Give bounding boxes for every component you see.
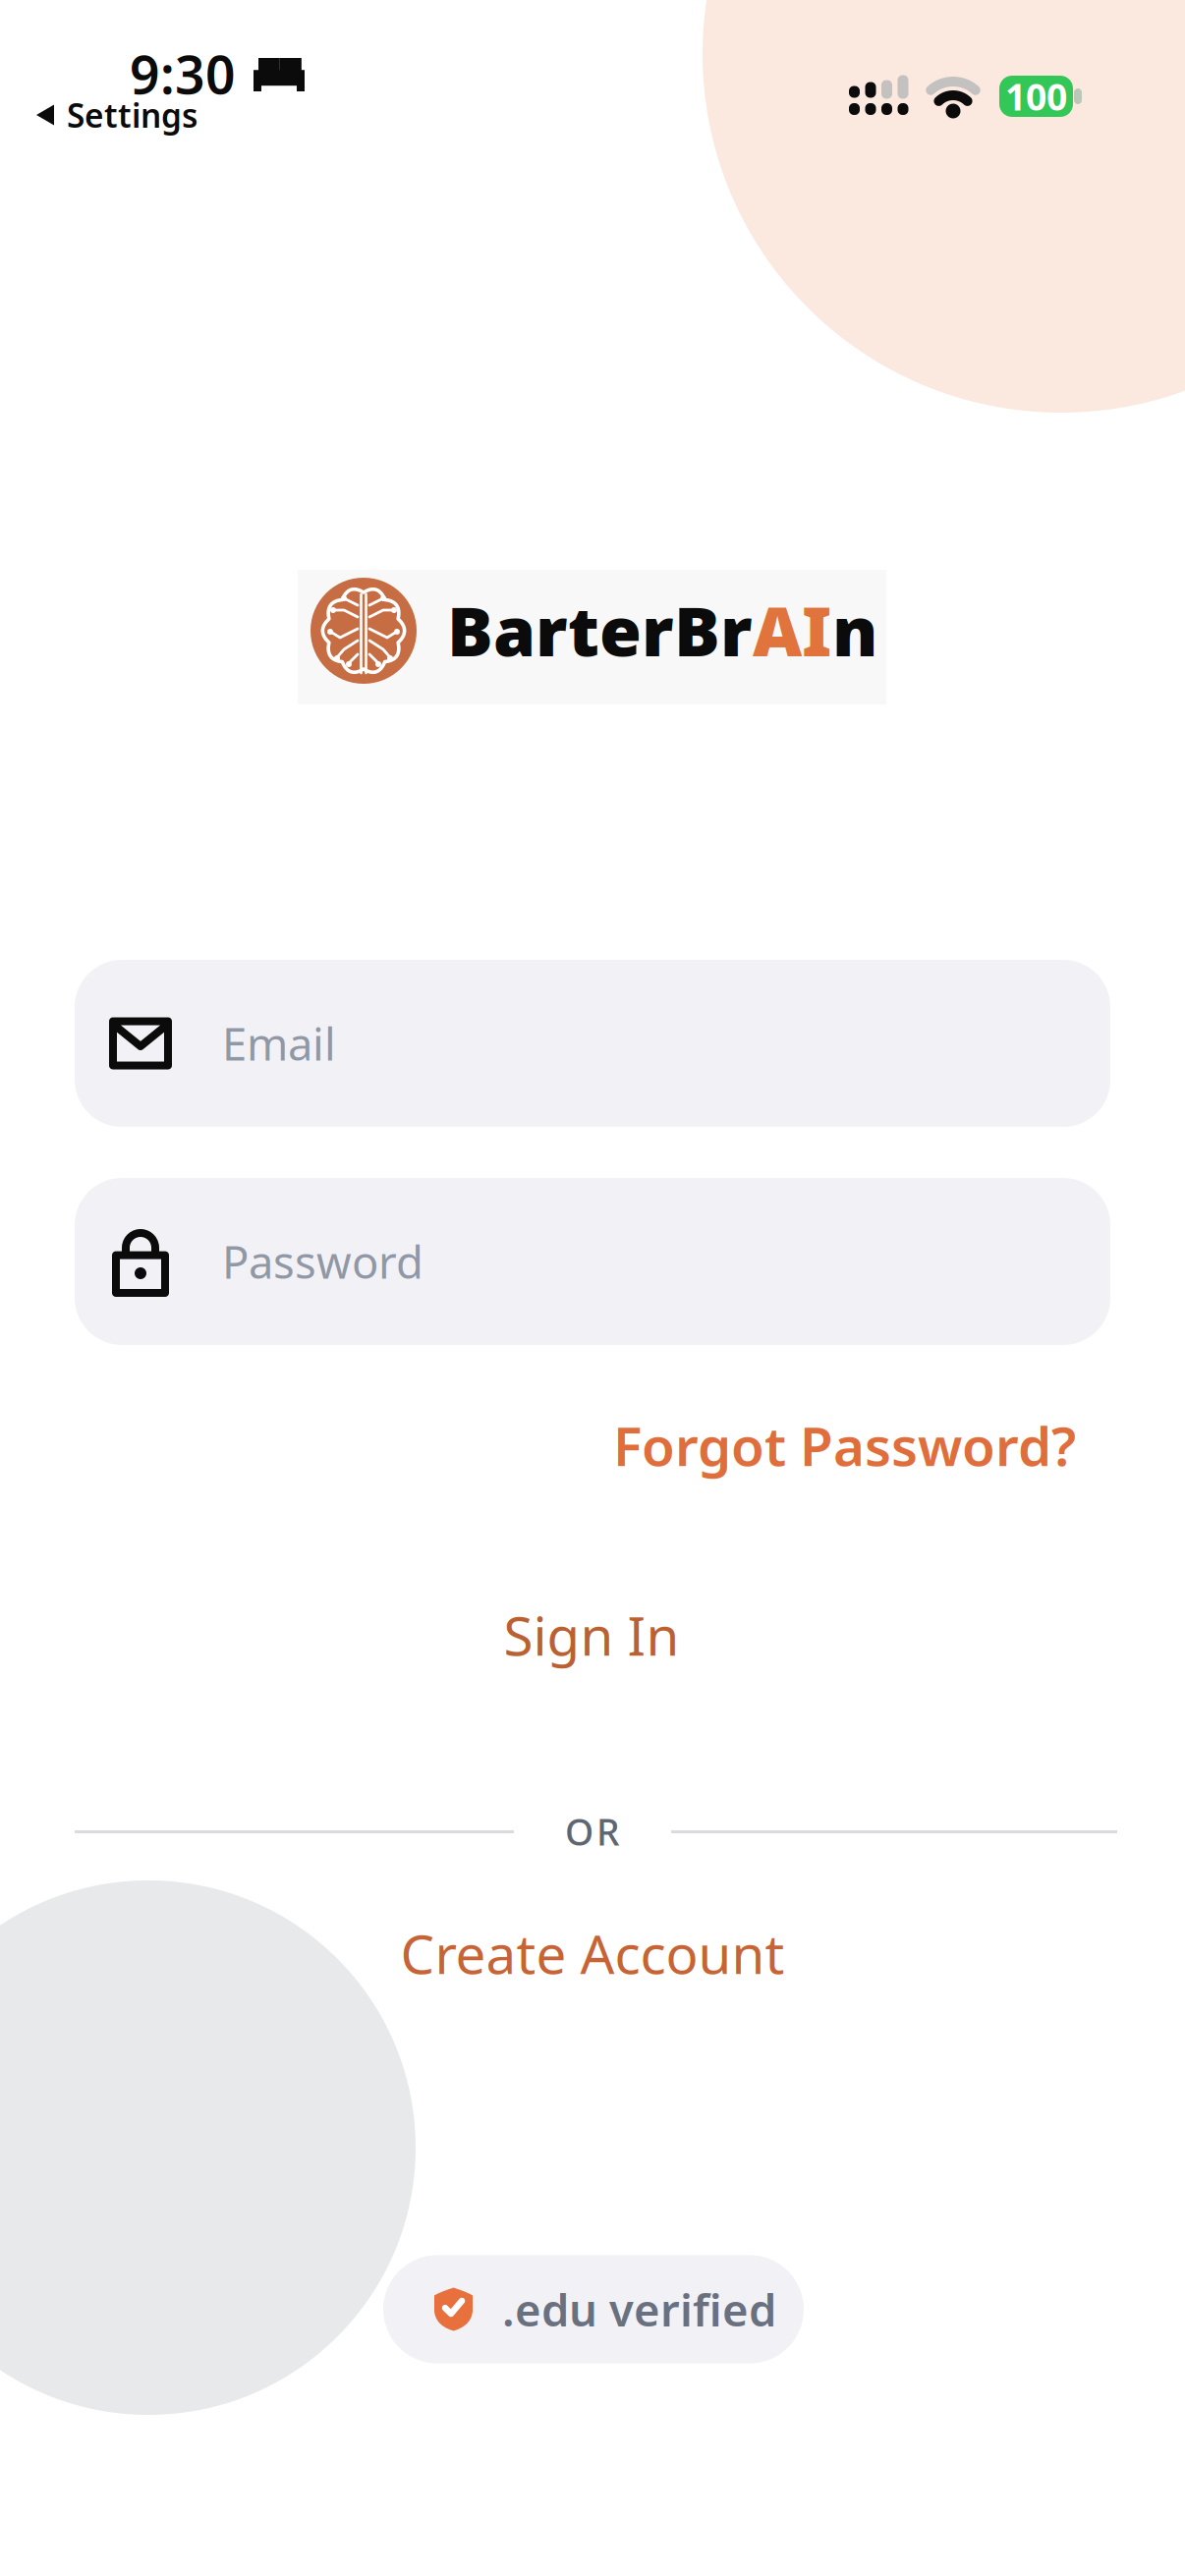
staticText: Password	[222, 1232, 423, 1291]
staticText: Forgot Password?	[613, 1410, 1076, 1481]
staticText: Sign In	[504, 1599, 679, 1670]
button[interactable]: Create Account	[400, 1917, 785, 1989]
button[interactable]: Password	[75, 1178, 1110, 1345]
staticText: 100	[1005, 72, 1067, 121]
button[interactable]: Sign In	[504, 1599, 679, 1670]
button[interactable]: Forgot Password?	[613, 1410, 1076, 1481]
staticText: BarterBr	[447, 585, 753, 675]
staticText: .edu verified	[502, 2280, 776, 2339]
staticText: Settings	[67, 93, 197, 137]
button[interactable]: Back to Settings	[36, 93, 197, 137]
staticText: n	[832, 585, 877, 675]
staticText: OR	[565, 1807, 620, 1856]
staticText: Email	[222, 1014, 336, 1073]
staticText: Create Account	[400, 1917, 785, 1989]
staticText: AI	[753, 585, 832, 675]
button[interactable]: Email	[75, 960, 1110, 1127]
staticText: 9:30	[130, 39, 236, 108]
